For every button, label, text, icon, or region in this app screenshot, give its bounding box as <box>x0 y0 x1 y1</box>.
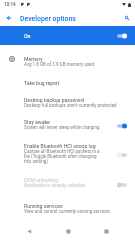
button[interactable]: OEM unlocking <box>0 174 135 198</box>
button[interactable]: Back <box>20 222 38 240</box>
button[interactable]: Home <box>59 222 77 240</box>
button[interactable]: Recent apps <box>97 222 115 240</box>
staticText: On <box>24 33 31 39</box>
staticText: Desktop backup password <box>24 98 84 103</box>
staticText: Screen will never sleep while charging <box>24 125 100 130</box>
staticText: Desktop full backups aren't currently pr… <box>24 103 117 108</box>
button[interactable]: Take bug report <box>0 73 135 93</box>
staticText: Enable Bluetooth HCI snoop log <box>24 144 96 149</box>
staticText: Avg 1.8 GB of 3.9 GB memory used <box>24 62 94 67</box>
button[interactable]: Stay awake <box>0 115 135 139</box>
staticText: Capture all Bluetooth HCI packets in a f… <box>24 149 101 164</box>
staticText: Stay awake <box>24 120 50 125</box>
staticText: 10:14 <box>4 2 16 7</box>
button[interactable]: Desktop backup password <box>0 93 135 115</box>
button[interactable]: Search <box>119 11 135 24</box>
button[interactable]: Memory <box>0 45 135 73</box>
button[interactable]: Enable Bluetooth HCI snoop log <box>0 139 135 174</box>
button[interactable]: On <box>0 26 135 45</box>
button[interactable]: Back <box>0 11 20 24</box>
staticText: Memory <box>24 57 43 62</box>
button[interactable]: Running services <box>0 198 135 222</box>
staticText: Take bug report <box>24 81 60 86</box>
staticText: OEM unlocking <box>24 178 59 183</box>
staticText: View and control currently running servi… <box>24 209 110 214</box>
staticText: Bootloader is already unlocked <box>24 183 86 188</box>
staticText: Developer options <box>20 15 76 23</box>
staticText: Running services <box>24 204 63 209</box>
